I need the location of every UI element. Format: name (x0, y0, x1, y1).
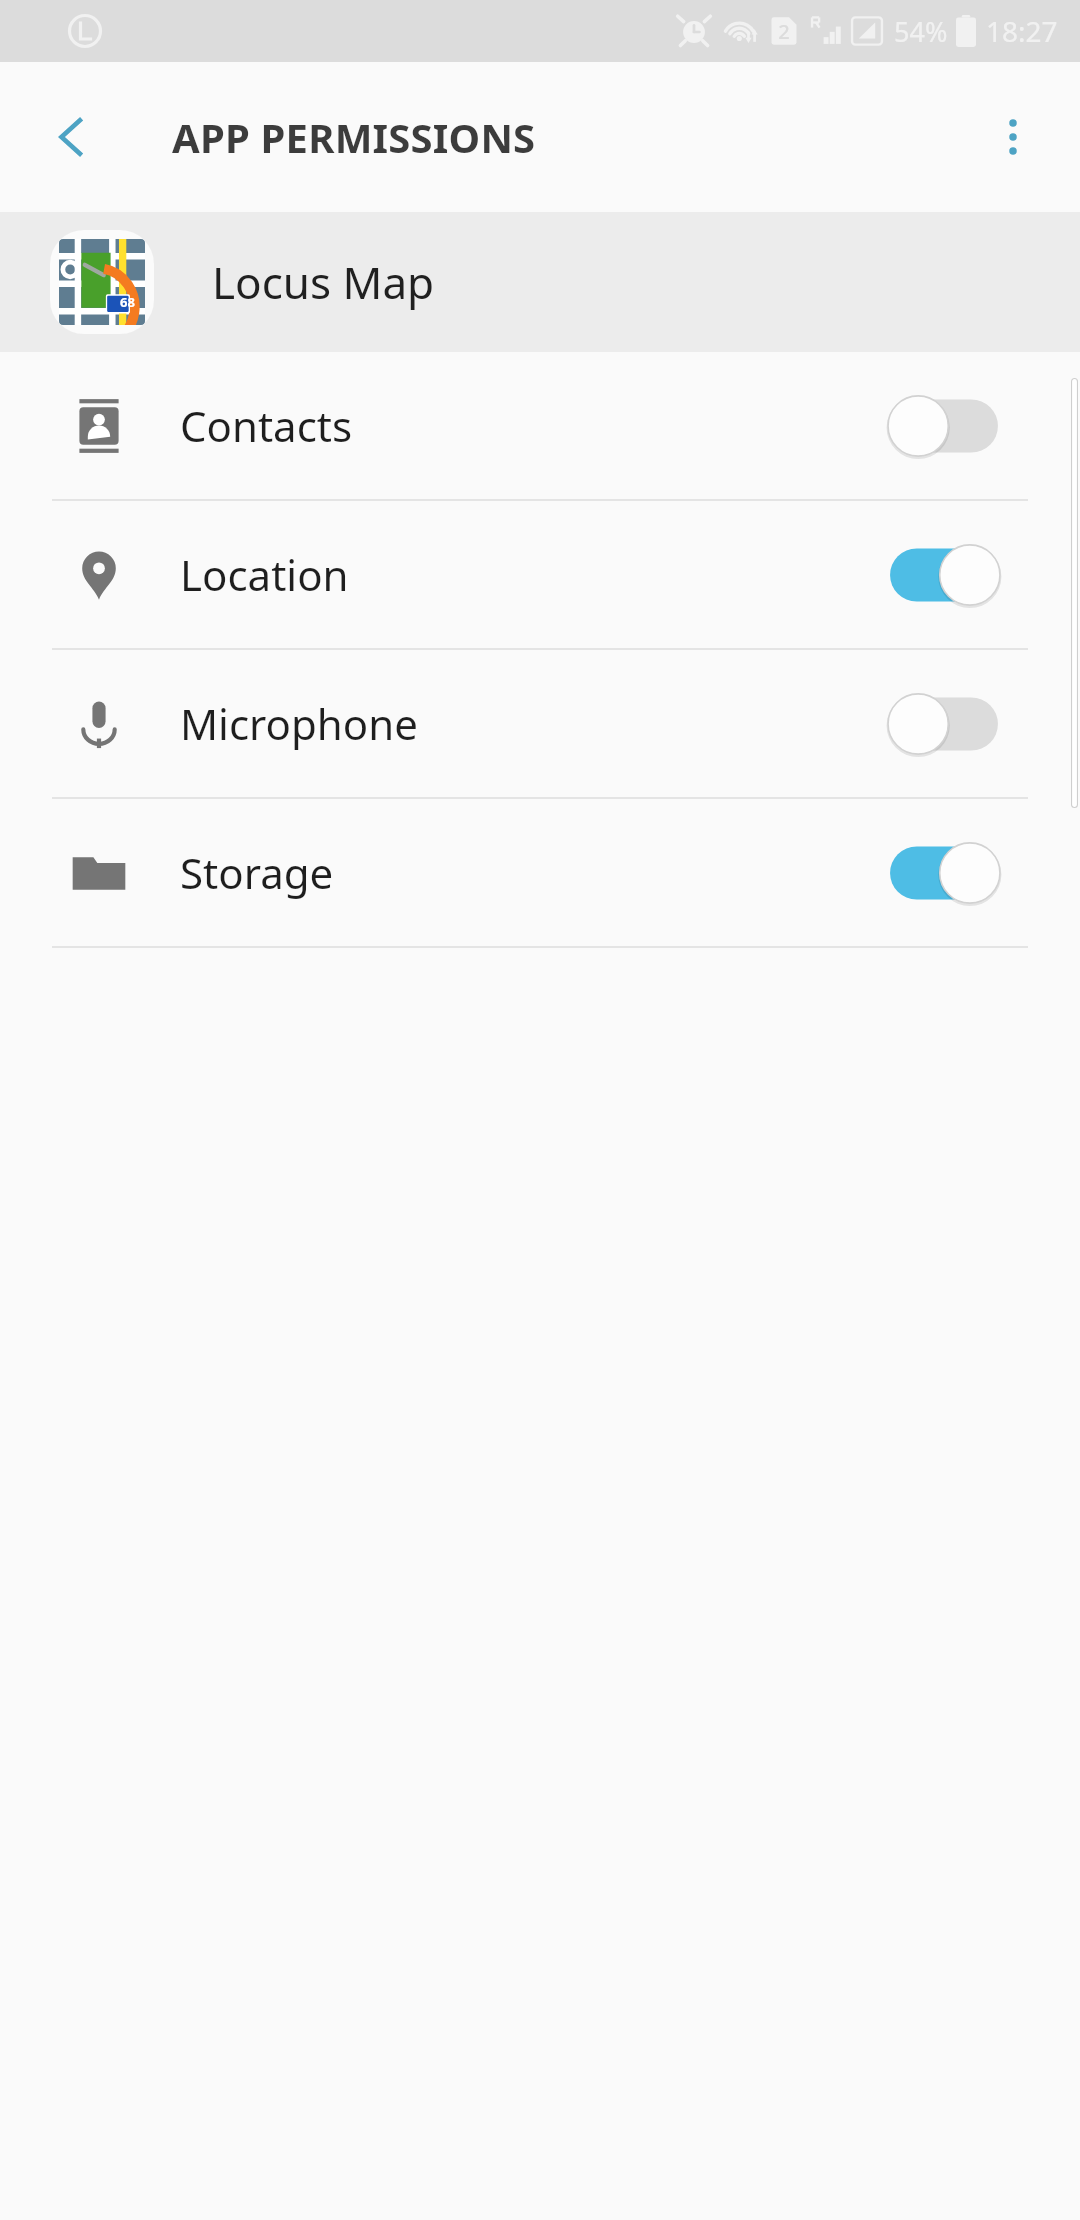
button[interactable]: More options (972, 96, 1054, 178)
button[interactable]: Off (886, 391, 1002, 461)
button[interactable]: 68 (0, 212, 1080, 352)
staticText: Locus Map (212, 252, 435, 312)
staticText: 2 (778, 18, 790, 45)
button[interactable]: Location (0, 501, 1080, 648)
staticText: Storage (180, 844, 886, 901)
button[interactable]: Navigate up (34, 99, 110, 175)
staticText: APP PERMISSIONS (172, 110, 536, 164)
staticText: 68 (120, 293, 135, 311)
staticText: Location (180, 546, 886, 603)
staticText: 54% (894, 13, 948, 50)
button[interactable]: Microphone (0, 650, 1080, 797)
button[interactable]: On (886, 540, 1002, 610)
staticText: 18:27 (986, 12, 1058, 50)
button[interactable]: Storage (0, 799, 1080, 946)
staticText: Contacts (180, 397, 886, 454)
staticText: Microphone (180, 695, 886, 752)
button[interactable]: Contacts (0, 352, 1080, 499)
button[interactable]: On (886, 838, 1002, 908)
button[interactable]: Off (886, 689, 1002, 759)
